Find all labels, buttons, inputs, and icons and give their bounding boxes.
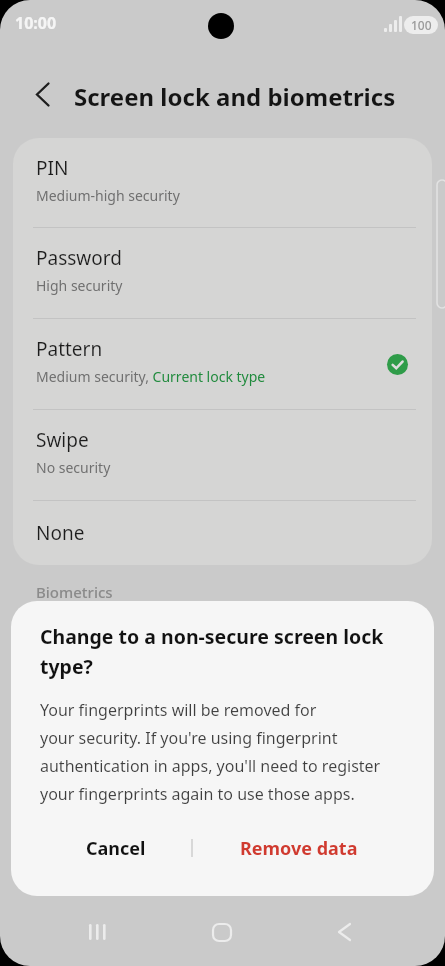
button[interactable]: PIN: [13, 138, 432, 227]
staticText: Your fingerprints will be removed for yo…: [40, 699, 381, 805]
staticText: No security: [36, 458, 111, 477]
staticText: Password: [36, 245, 122, 271]
staticText: Medium-high security: [36, 186, 180, 205]
staticText: PIN: [36, 155, 69, 181]
button[interactable]: [75, 910, 119, 954]
staticText: Screen lock and biometrics: [74, 80, 396, 113]
button[interactable]: Cancel: [40, 823, 191, 873]
staticText: 100: [411, 17, 432, 33]
button[interactable]: Pattern: [13, 319, 432, 409]
staticText: Cancel: [86, 836, 146, 861]
button[interactable]: None: [13, 501, 432, 565]
staticText: Medium security, Current lock type: [36, 367, 266, 386]
staticText: Remove data: [240, 836, 358, 861]
staticText: Pattern: [36, 336, 103, 362]
staticText: 10:00: [15, 12, 57, 34]
button[interactable]: Remove data: [193, 823, 405, 873]
staticText: High security: [36, 276, 123, 295]
staticText: None: [36, 520, 85, 546]
button[interactable]: [200, 910, 244, 954]
button[interactable]: [322, 910, 366, 954]
button[interactable]: [20, 74, 60, 114]
staticText: Swipe: [36, 427, 89, 453]
staticText: Biometrics: [36, 582, 113, 602]
staticText: Change to a non-secure screen lock type?: [40, 623, 405, 679]
button[interactable]: Swipe: [13, 410, 432, 500]
button[interactable]: Password: [13, 228, 432, 318]
